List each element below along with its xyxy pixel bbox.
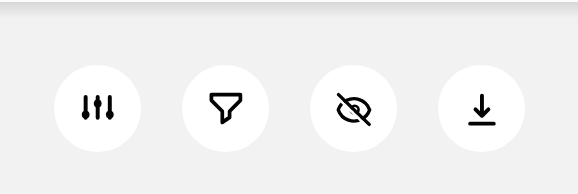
button[interactable]: Filter (182, 65, 269, 152)
button[interactable]: Tune (54, 65, 141, 152)
button[interactable]: Hide (310, 65, 397, 152)
button[interactable]: Download (438, 65, 525, 152)
